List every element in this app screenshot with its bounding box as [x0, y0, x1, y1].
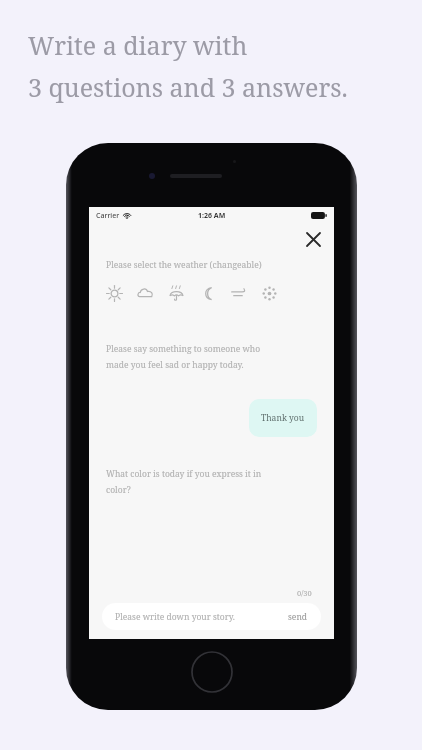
staticText: What color is today if you express it in	[106, 468, 262, 480]
button[interactable]: Snowy	[261, 285, 278, 302]
staticText: send	[288, 611, 308, 623]
staticText: Carrier	[96, 211, 120, 221]
button[interactable]: Thank you	[249, 399, 317, 437]
staticText: Please write down your story.	[115, 611, 235, 623]
button[interactable]: Cloudy	[137, 285, 154, 302]
staticText: Please select the weather (changeable)	[106, 259, 262, 271]
button[interactable]: Please write down your story.	[102, 603, 321, 630]
staticText: 3 questions and 3 answers.	[28, 70, 348, 104]
staticText: 1:26 AM	[198, 211, 226, 221]
staticText: Thank you	[261, 412, 305, 424]
staticText: 0/30	[297, 588, 312, 598]
button[interactable]: Sunny	[106, 285, 123, 302]
button[interactable]: Close	[300, 226, 326, 252]
button[interactable]: Night	[199, 285, 216, 302]
staticText: color?	[106, 484, 131, 496]
staticText: made you feel sad or happy today.	[106, 359, 244, 371]
button[interactable]: Windy	[230, 285, 247, 302]
staticText: Write a diary with	[28, 28, 248, 62]
staticText: Please say something to someone who	[106, 343, 261, 355]
button[interactable]: Rainy	[168, 285, 185, 302]
